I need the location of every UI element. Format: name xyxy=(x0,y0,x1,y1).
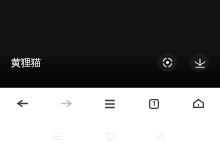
staticText: 黄狸猫 xyxy=(11,56,41,69)
button[interactable]: Home xyxy=(176,88,220,119)
button[interactable]: Back xyxy=(0,88,44,119)
button[interactable]: Forward xyxy=(44,88,88,119)
button[interactable]: Recents xyxy=(47,126,67,146)
button[interactable]: Home xyxy=(100,126,120,146)
button[interactable]: Download xyxy=(190,53,209,72)
button[interactable]: Menu xyxy=(88,88,132,119)
button[interactable]: Tabs xyxy=(132,88,176,119)
button[interactable]: Scan xyxy=(158,53,177,72)
staticText: 1 xyxy=(152,99,157,109)
